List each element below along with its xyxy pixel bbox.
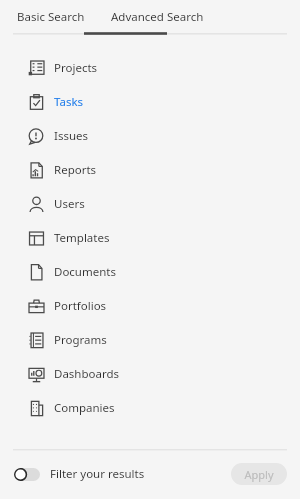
button[interactable]: Basic Search <box>13 0 89 34</box>
staticText: Users <box>54 196 85 212</box>
staticText: Reports <box>54 162 97 178</box>
button[interactable]: Users <box>0 187 300 221</box>
staticText: Issues <box>54 128 89 144</box>
staticText: Dashboards <box>54 366 120 382</box>
button[interactable]: Dashboards <box>0 357 300 391</box>
staticText: Projects <box>54 60 98 76</box>
staticText: Filter your results <box>50 466 145 482</box>
staticText: Companies <box>54 400 115 416</box>
staticText: Apply <box>244 467 274 482</box>
button[interactable]: Tasks <box>0 85 300 119</box>
button[interactable]: Documents <box>0 255 300 289</box>
button[interactable]: Projects <box>0 51 300 85</box>
staticText: Basic Search <box>17 9 85 25</box>
button[interactable]: Templates <box>0 221 300 255</box>
button[interactable]: Apply <box>231 463 287 485</box>
button[interactable]: Programs <box>0 323 300 357</box>
button[interactable]: Reports <box>0 153 300 187</box>
staticText: Templates <box>54 230 110 246</box>
button[interactable]: Issues <box>0 119 300 153</box>
button[interactable]: Portfolios <box>0 289 300 323</box>
staticText: Programs <box>54 332 107 348</box>
button[interactable]: Companies <box>0 391 300 425</box>
staticText: Advanced Search <box>111 9 204 25</box>
staticText: Tasks <box>54 94 84 110</box>
button[interactable]: Advanced Search <box>107 0 208 34</box>
button[interactable]: Filter your results <box>14 466 145 482</box>
staticText: Portfolios <box>54 298 107 314</box>
staticText: Documents <box>54 264 116 280</box>
